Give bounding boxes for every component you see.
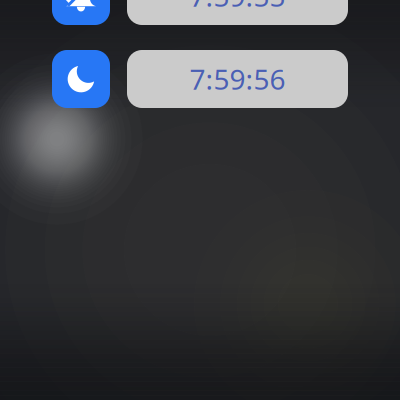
button[interactable]: 7:59:55	[127, 0, 348, 25]
button[interactable]: 7:59:56	[127, 50, 348, 108]
staticText: 7:59:55	[189, 0, 285, 15]
button[interactable]: Do Not Disturb	[52, 50, 110, 108]
staticText: 7:59:56	[189, 60, 285, 98]
button[interactable]: Silent mode	[52, 0, 110, 25]
